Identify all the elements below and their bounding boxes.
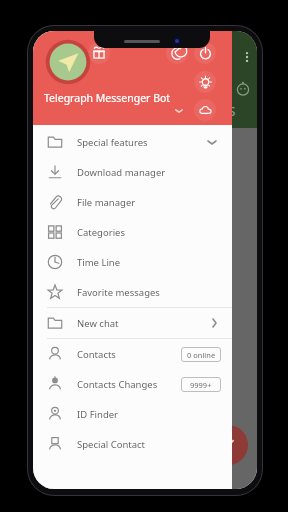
button[interactable]: Night mode bbox=[166, 42, 188, 64]
button[interactable]: Compose new message bbox=[208, 425, 248, 465]
button[interactable]: More options bbox=[235, 45, 257, 69]
button[interactable]: Search bbox=[201, 45, 227, 71]
button[interactable]: Contacts Changes bbox=[33, 369, 232, 399]
button[interactable]: Gifts bbox=[88, 42, 110, 64]
staticText: Contacts Changes bbox=[77, 378, 158, 391]
button[interactable]: Bots tab bbox=[230, 76, 256, 102]
button[interactable]: Cloud sync bbox=[194, 99, 216, 121]
button[interactable]: Favorite messages bbox=[33, 277, 232, 307]
staticText: Contacts bbox=[77, 348, 116, 361]
staticText: Special features bbox=[77, 136, 148, 149]
button[interactable]: Channels tab bbox=[197, 76, 223, 102]
button[interactable]: Special features bbox=[33, 127, 232, 157]
staticText: THERS bbox=[196, 102, 236, 120]
button[interactable]: Theme bbox=[194, 71, 216, 93]
button[interactable]: Download manager bbox=[33, 157, 232, 187]
staticText: Categories bbox=[77, 226, 125, 239]
staticText: 0 online bbox=[187, 350, 216, 360]
button[interactable]: Time Line bbox=[33, 247, 232, 277]
staticText: ID Finder bbox=[77, 408, 119, 421]
button[interactable]: Power bbox=[194, 42, 216, 64]
staticText: Telegraph Messenger Bot bbox=[44, 91, 171, 105]
button[interactable]: New chat bbox=[33, 308, 232, 338]
button[interactable]: Profile avatar bbox=[44, 38, 92, 86]
staticText: File manager bbox=[77, 196, 136, 209]
button[interactable]: ID Finder bbox=[33, 399, 232, 429]
button[interactable]: Contacts bbox=[33, 339, 232, 369]
staticText: 9999+ bbox=[190, 380, 212, 390]
staticText: Download manager bbox=[77, 166, 166, 179]
button[interactable]: Categories bbox=[33, 217, 232, 247]
button[interactable]: Expand accounts bbox=[169, 101, 189, 121]
button[interactable]: Special Contact bbox=[33, 429, 232, 459]
staticText: Time Line bbox=[77, 256, 121, 269]
staticText: New chat bbox=[77, 317, 119, 330]
button[interactable]: File manager bbox=[33, 187, 232, 217]
staticText: Special Contact bbox=[77, 438, 146, 451]
staticText: Favorite messages bbox=[77, 286, 160, 299]
